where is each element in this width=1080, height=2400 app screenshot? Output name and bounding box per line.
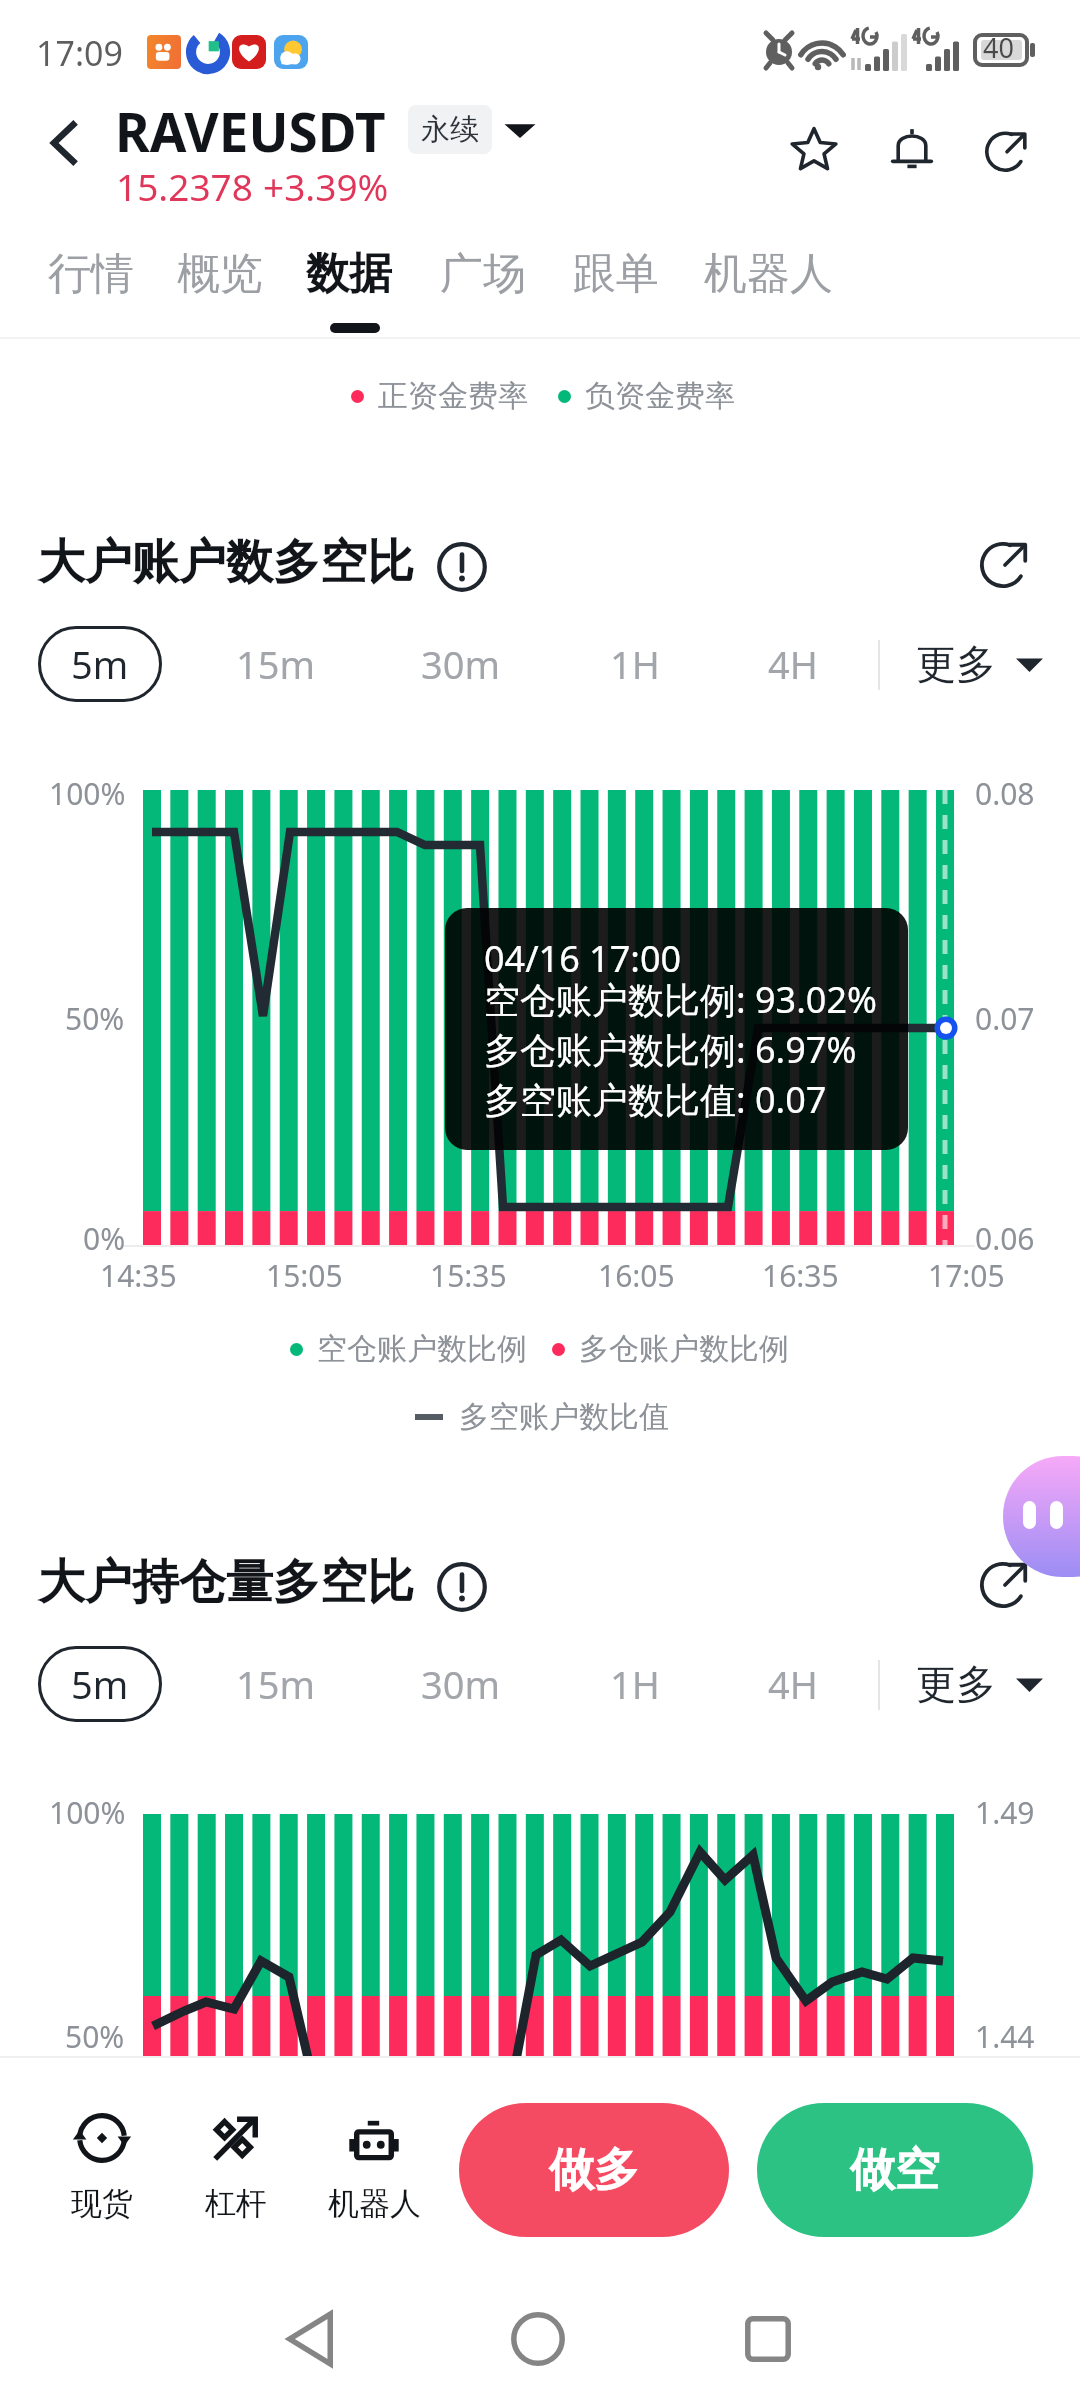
button[interactable]: 做多 — [459, 2103, 729, 2237]
button[interactable]: Back — [270, 2299, 350, 2379]
staticText: 4H — [768, 1658, 818, 1710]
staticText: 15m — [236, 638, 316, 690]
staticText: 15.2378 — [116, 161, 253, 211]
staticText: 16:35 — [762, 1255, 839, 1296]
staticText: 0.08 — [975, 773, 1035, 814]
staticText: 50% — [65, 998, 125, 1039]
staticText: 负资金费率 — [585, 377, 735, 415]
staticText: 多空账户数比值 — [459, 1398, 669, 1436]
button[interactable]: 1H — [592, 626, 678, 702]
staticText: 15:05 — [266, 1255, 343, 1296]
button[interactable]: 1H — [592, 1646, 678, 1722]
button[interactable]: Expand chart — [969, 1547, 1041, 1619]
staticText: 5m — [71, 638, 129, 690]
staticText: 行情 — [48, 247, 134, 301]
staticText: 机器人 — [328, 2184, 421, 2223]
staticText: 永续 — [421, 111, 479, 148]
staticText: 正资金费率 — [378, 377, 528, 415]
staticText: 大户账户数多空比 — [38, 533, 414, 592]
staticText: 多仓账户数比例: 6.97% — [484, 1025, 857, 1074]
button[interactable]: 4H — [750, 626, 836, 702]
button[interactable]: 更多 — [902, 1646, 1057, 1722]
staticText: +3.39% — [263, 161, 389, 211]
button[interactable]: 15m — [220, 626, 332, 702]
button[interactable]: 数据 — [293, 236, 405, 316]
button[interactable]: 广场 — [427, 236, 539, 316]
button[interactable]: 更多 — [902, 626, 1057, 702]
staticText: 100% — [49, 1792, 126, 1833]
button[interactable]: 机器人 — [314, 2112, 434, 2223]
staticText: 17:09 — [36, 30, 123, 76]
staticText: 做多 — [549, 2142, 639, 2199]
staticText: 1H — [610, 1658, 660, 1710]
staticText: 跟单 — [573, 247, 659, 301]
button[interactable]: 机器人 — [691, 236, 846, 316]
staticText: 4H — [768, 638, 818, 690]
staticText: 概览 — [177, 247, 263, 301]
button[interactable]: Info — [426, 531, 498, 603]
button[interactable]: 杠杆 — [176, 2112, 296, 2223]
staticText: 更多 — [916, 1659, 996, 1709]
button[interactable]: 现货 — [42, 2112, 162, 2223]
button[interactable]: Price alerts — [872, 108, 952, 188]
staticText: 1H — [610, 638, 660, 690]
staticText: 机器人 — [704, 247, 833, 301]
staticText: 30m — [421, 1658, 501, 1710]
button[interactable]: 概览 — [164, 236, 276, 316]
staticText: 40 — [983, 29, 1014, 66]
button[interactable]: 5m — [38, 1646, 162, 1722]
staticText: 17:05 — [928, 1255, 1005, 1296]
staticText: 更多 — [916, 639, 996, 689]
staticText: 现货 — [71, 2184, 133, 2223]
staticText: 1.49 — [975, 1792, 1035, 1833]
staticText: 多空账户数比值: 0.07 — [484, 1075, 827, 1124]
button[interactable]: 做空 — [757, 2103, 1033, 2237]
staticText: 杠杆 — [205, 2184, 267, 2223]
staticText: 14:35 — [100, 1255, 177, 1296]
button[interactable]: 30m — [405, 1646, 517, 1722]
staticText: 5m — [71, 1658, 129, 1710]
button[interactable]: 30m — [405, 626, 517, 702]
staticText: 15m — [236, 1658, 316, 1710]
staticText: 30m — [421, 638, 501, 690]
staticText: 0% — [83, 1218, 126, 1259]
staticText: 0.06 — [975, 1218, 1035, 1259]
button[interactable]: Add to favorites — [774, 108, 854, 188]
button[interactable]: Back — [22, 98, 108, 188]
button[interactable]: 15m — [220, 1646, 332, 1722]
staticText: 广场 — [440, 247, 526, 301]
button[interactable]: Info — [426, 1551, 498, 1623]
staticText: 空仓账户数比例 — [317, 1330, 527, 1368]
staticText: 做空 — [850, 2142, 940, 2199]
button[interactable]: Contract type — [502, 112, 538, 148]
staticText: 15:35 — [430, 1255, 507, 1296]
button[interactable]: 永续 — [408, 105, 492, 154]
button[interactable]: Home — [498, 2299, 578, 2379]
staticText: 空仓账户数比例: 93.02% — [484, 975, 877, 1024]
button[interactable]: Share — [967, 110, 1047, 190]
staticText: 1.44 — [975, 2016, 1035, 2057]
staticText: 数据 — [306, 247, 392, 301]
staticText: 大户持仓量多空比 — [38, 1553, 414, 1612]
button[interactable]: 4H — [750, 1646, 836, 1722]
button[interactable]: 5m — [38, 626, 162, 702]
staticText: 50% — [65, 2016, 125, 2057]
staticText: 多仓账户数比例 — [579, 1330, 789, 1368]
button[interactable]: AI assistant — [1003, 1456, 1080, 1577]
button[interactable]: Recent apps — [728, 2299, 808, 2379]
staticText: 16:05 — [598, 1255, 675, 1296]
staticText: RAVEUSDT — [115, 95, 386, 167]
button[interactable]: Expand chart — [969, 527, 1041, 599]
staticText: 04/16 17:00 — [484, 934, 682, 983]
button[interactable]: 行情 — [35, 236, 147, 316]
button[interactable]: 跟单 — [560, 236, 672, 316]
staticText: 0.07 — [975, 998, 1035, 1039]
staticText: 100% — [49, 773, 126, 814]
